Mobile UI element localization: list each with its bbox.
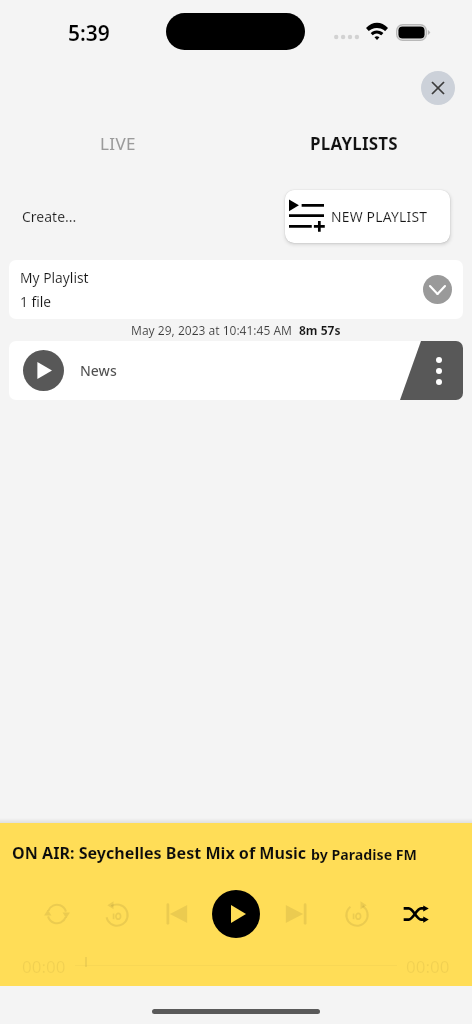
- staticText: Create...: [22, 207, 77, 226]
- button[interactable]: Close: [421, 71, 455, 105]
- button[interactable]: Repeat: [38, 895, 76, 933]
- staticText: 8m 57s: [299, 322, 341, 338]
- staticText: PLAYLISTS: [310, 132, 398, 155]
- staticText: News: [80, 361, 117, 380]
- button[interactable]: My Playlist: [9, 260, 463, 319]
- button[interactable]: More options: [400, 341, 463, 400]
- button[interactable]: LIVE: [0, 114, 236, 172]
- staticText: May 29, 2023 at 10:41:45 AM: [131, 322, 292, 338]
- button[interactable]: Next track: [278, 895, 316, 933]
- button[interactable]: Replay 10 seconds: [98, 895, 136, 933]
- staticText: NEW PLAYLIST: [331, 207, 428, 226]
- staticText: LIVE: [100, 132, 136, 155]
- staticText: 1 file: [20, 292, 52, 311]
- button[interactable]: News: [23, 341, 463, 400]
- button[interactable]: Play: [212, 890, 260, 938]
- button[interactable]: Expand playlist: [423, 275, 452, 304]
- button[interactable]: PLAYLISTS: [236, 114, 472, 172]
- staticText: My Playlist: [20, 268, 89, 287]
- staticText: 5:39: [68, 19, 110, 48]
- button[interactable]: Forward 10 seconds: [338, 895, 376, 933]
- staticText: by Paradise FM: [311, 845, 417, 864]
- staticText: ON AIR: Seychelles Best Mix of Music: [12, 842, 307, 864]
- button[interactable]: Shuffle: [397, 895, 435, 933]
- staticText: 00:00: [22, 955, 66, 978]
- button[interactable]: Previous track: [157, 895, 195, 933]
- button[interactable]: NEW PLAYLIST: [285, 190, 450, 243]
- staticText: 00:00: [406, 955, 450, 978]
